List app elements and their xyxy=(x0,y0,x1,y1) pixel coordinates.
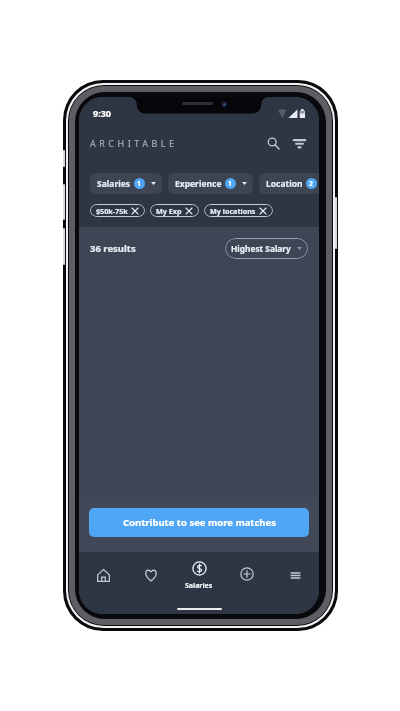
staticText: 9:30 xyxy=(93,107,111,119)
button[interactable]: Home xyxy=(79,553,127,597)
staticText: 2 xyxy=(309,179,314,189)
button[interactable]: Filter options xyxy=(289,133,309,153)
button[interactable]: Contribute to see more matches xyxy=(89,508,309,537)
button[interactable]: Salaries xyxy=(90,173,162,194)
staticText: Highest Salary xyxy=(231,243,291,254)
staticText: 36 results xyxy=(90,242,136,255)
staticText: My Exp xyxy=(156,206,182,216)
staticText: $50k-75k xyxy=(96,206,128,216)
button[interactable]: Location xyxy=(259,173,319,194)
button[interactable]: My Exp xyxy=(150,204,199,217)
button[interactable]: Highest Salary xyxy=(225,238,308,259)
button[interactable]: Salaries xyxy=(175,553,223,597)
staticText: ARCHITABLE xyxy=(90,137,178,149)
button[interactable]: Experience xyxy=(168,173,253,194)
staticText: Contribute to see more matches xyxy=(123,516,276,529)
button[interactable]: Saved xyxy=(127,553,175,597)
button[interactable]: Add xyxy=(223,553,271,597)
button[interactable]: Search xyxy=(263,133,283,153)
staticText: Location xyxy=(266,178,303,190)
button[interactable]: $50k-75k xyxy=(90,204,145,217)
staticText: My locations xyxy=(210,206,256,216)
staticText: 1 xyxy=(137,179,142,189)
staticText: Experience xyxy=(175,178,222,190)
staticText: Salaries xyxy=(97,178,131,190)
staticText: Salaries xyxy=(185,581,213,591)
button[interactable]: Menu xyxy=(271,553,319,597)
staticText: 1 xyxy=(228,179,233,189)
button[interactable]: My locations xyxy=(204,204,273,217)
